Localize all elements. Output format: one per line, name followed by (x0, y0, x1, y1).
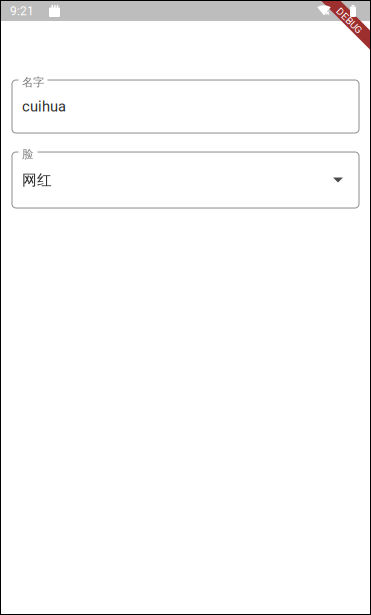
staticText: 脸 (22, 147, 33, 161)
button[interactable]: 名字 (0, 80, 371, 133)
staticText: 9:21 (10, 4, 34, 18)
staticText: 名字 (22, 75, 44, 89)
staticText: 网红 (22, 171, 52, 189)
button[interactable]: 脸 (0, 152, 371, 208)
staticText: DEBUG (334, 15, 366, 27)
staticText: cuihua (22, 98, 66, 115)
